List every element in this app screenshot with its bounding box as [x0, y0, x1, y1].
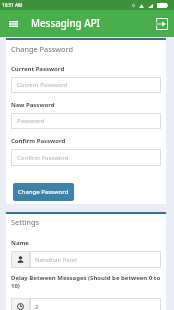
button[interactable]: Logout	[153, 15, 171, 33]
button[interactable]: Change Password	[13, 183, 74, 201]
staticText: Password	[17, 117, 45, 125]
staticText: Nandhan Patel	[35, 256, 77, 264]
staticText: Change Password	[18, 188, 69, 196]
staticText: Confirm Password	[11, 137, 161, 145]
staticText: Confirm Password	[17, 154, 69, 162]
staticText: Current Password	[17, 81, 68, 89]
staticText: Current Password	[11, 65, 161, 73]
staticText: Delay Between Messages (Should be betwee…	[11, 274, 161, 290]
button[interactable]: 2	[11, 298, 161, 310]
staticText: Change Password	[11, 44, 74, 54]
button[interactable]: Open navigation menu	[4, 15, 22, 33]
button[interactable]: Nandhan Patel	[11, 251, 161, 268]
staticText: 2	[35, 303, 39, 310]
staticText: 10:51 AM	[2, 2, 23, 8]
staticText: New Password	[11, 101, 161, 109]
button[interactable]: Confirm Password	[11, 149, 161, 166]
staticText: Settings	[11, 217, 40, 227]
staticText: Name	[11, 239, 161, 247]
button[interactable]: Current Password	[11, 77, 161, 93]
staticText: Messaging API	[31, 17, 101, 30]
button[interactable]: Password	[11, 113, 161, 129]
